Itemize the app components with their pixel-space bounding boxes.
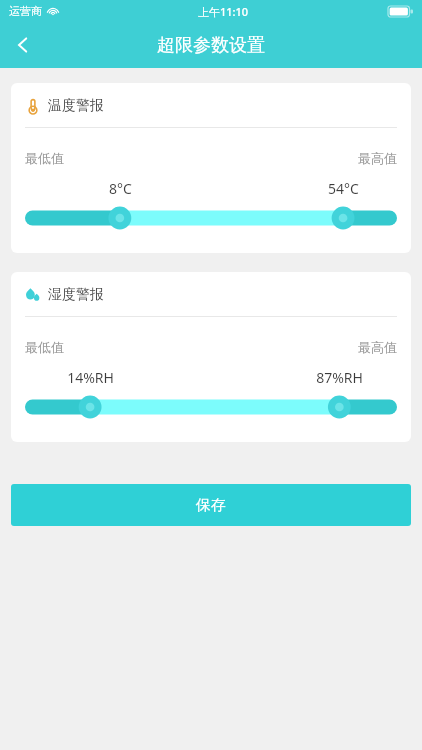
staticText: 湿度警报 (48, 286, 104, 304)
staticText: 14%RH (67, 368, 114, 387)
staticText: 运营商 (9, 4, 42, 18)
button[interactable]: 保存 (11, 484, 411, 526)
staticText: 超限参数设置 (157, 34, 265, 57)
staticText: 最低值 (25, 339, 64, 355)
button[interactable]: 温度警报 (11, 83, 411, 253)
staticText: 最高值 (358, 150, 397, 166)
staticText: 最高值 (358, 339, 397, 355)
staticText: 87%RH (316, 368, 363, 387)
button[interactable]: 湿度警报 (11, 272, 411, 442)
button[interactable] (25, 394, 397, 420)
staticText: 保存 (196, 496, 226, 515)
button[interactable]: Back (0, 22, 46, 68)
staticText: 上午11:10 (198, 4, 249, 19)
staticText: 8°C (109, 179, 132, 198)
button[interactable] (25, 205, 397, 231)
staticText: 温度警报 (48, 97, 104, 115)
staticText: 最低值 (25, 150, 64, 166)
staticText: 54°C (328, 179, 359, 198)
